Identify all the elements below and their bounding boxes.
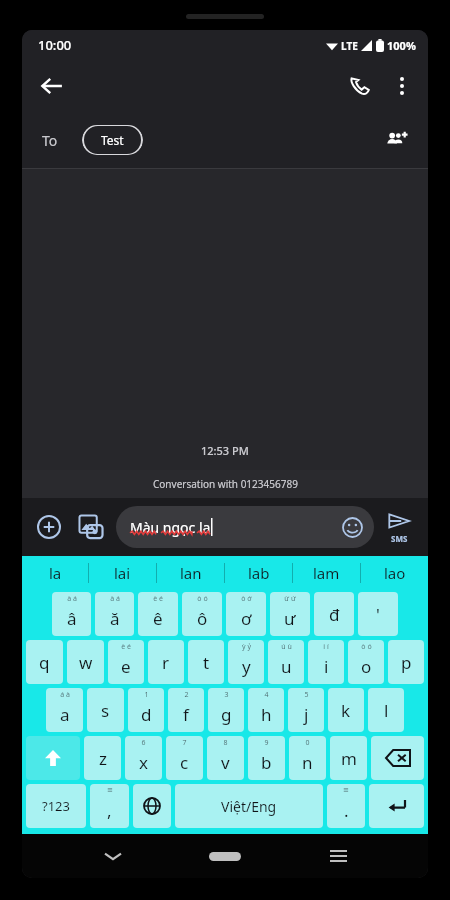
button[interactable]: 7 [166, 736, 203, 780]
button[interactable]: ?123 [26, 784, 86, 828]
button[interactable]: Backspace [371, 736, 424, 780]
staticText: v [221, 751, 230, 774]
staticText: r [162, 651, 170, 674]
button[interactable]: 0 [289, 736, 326, 780]
button[interactable]: la [22, 556, 88, 590]
staticText: p [401, 651, 412, 674]
button[interactable]: Gallery [72, 508, 110, 546]
staticText: â [67, 607, 77, 630]
button[interactable]: Việt/Eng [175, 784, 323, 828]
staticText: o [361, 655, 372, 678]
button[interactable]: Add attachment [30, 508, 68, 546]
staticText: t [203, 651, 210, 674]
button[interactable]: Send SMS [378, 498, 420, 556]
button[interactable]: s [87, 688, 124, 732]
button[interactable]: Home [203, 834, 247, 878]
staticText: 8 [223, 738, 228, 748]
staticText: w [79, 651, 93, 674]
staticText: 3 [224, 690, 229, 700]
staticText: 0 [305, 738, 310, 748]
staticText: u [281, 655, 292, 678]
button[interactable]: Màu ngọc la [116, 506, 374, 548]
button[interactable]: Shift [26, 736, 80, 780]
button[interactable]: More options [382, 66, 422, 106]
button[interactable]: lam [293, 556, 360, 590]
button[interactable]: ' [358, 592, 398, 636]
button[interactable]: lan [157, 556, 224, 590]
staticText: 2 [184, 690, 189, 700]
staticText: ≡ [107, 786, 113, 794]
staticText: ≡ [343, 786, 349, 794]
button[interactable]: 2 [168, 688, 204, 732]
button[interactable]: 3 [208, 688, 244, 732]
button[interactable]: ≡ [90, 784, 129, 828]
staticText: 10:00 [38, 36, 72, 54]
staticText: b [261, 751, 272, 774]
button[interactable]: ò ó [182, 592, 222, 636]
staticText: l [384, 699, 389, 722]
button[interactable]: i í [308, 640, 344, 684]
staticText: ò ó [197, 594, 208, 604]
staticText: ă [110, 607, 120, 630]
button[interactable]: ỳ ỷ [228, 640, 264, 684]
staticText: n [302, 751, 313, 774]
button[interactable]: Hide keyboard [91, 834, 135, 878]
button[interactable]: Change language [133, 784, 171, 828]
staticText: 9 [264, 738, 269, 748]
staticText: ' [376, 603, 380, 626]
button[interactable]: lab [225, 556, 292, 590]
staticText: 7 [182, 738, 187, 748]
button[interactable]: z [84, 736, 121, 780]
staticText: ơ [241, 607, 252, 630]
button[interactable]: r [148, 640, 184, 684]
staticText: à á [110, 594, 120, 604]
button[interactable]: lai [89, 556, 156, 590]
button[interactable]: k [328, 688, 364, 732]
button[interactable]: Test [82, 125, 143, 155]
staticText: ỳ ỷ [242, 642, 251, 652]
button[interactable]: l [368, 688, 404, 732]
button[interactable]: ừ ứ [270, 592, 310, 636]
button[interactable]: à á [95, 592, 134, 636]
staticText: lam [313, 563, 340, 583]
button[interactable]: Recent apps [316, 834, 360, 878]
button[interactable]: Enter [369, 784, 424, 828]
staticText: e [121, 655, 131, 678]
button[interactable]: m [330, 736, 367, 780]
button[interactable]: 6 [125, 736, 162, 780]
button[interactable]: ò ớ [226, 592, 266, 636]
button[interactable]: è é [138, 592, 178, 636]
button[interactable]: ≡ [327, 784, 365, 828]
button[interactable]: 9 [248, 736, 285, 780]
button[interactable]: lao [361, 556, 428, 590]
button[interactable]: à á [52, 592, 91, 636]
button[interactable]: Add people [376, 119, 418, 161]
button[interactable]: đ [314, 592, 354, 636]
staticText: lab [248, 563, 270, 583]
button[interactable]: Emoji [338, 513, 366, 541]
button[interactable]: Back [30, 64, 74, 108]
staticText: ư [284, 607, 296, 630]
staticText: k [341, 699, 351, 722]
button[interactable]: ú ù [268, 640, 304, 684]
staticText: đ [329, 603, 340, 626]
staticText: c [180, 751, 189, 774]
button[interactable]: 1 [128, 688, 164, 732]
button[interactable]: 5 [288, 688, 324, 732]
staticText: Việt/Eng [221, 797, 277, 816]
staticText: 12:53 PM [201, 443, 249, 458]
button[interactable]: ò ó [348, 640, 384, 684]
button[interactable]: á à [46, 688, 83, 732]
button[interactable]: è é [108, 640, 144, 684]
button[interactable]: 4 [248, 688, 284, 732]
button[interactable]: p [388, 640, 424, 684]
button[interactable]: q [26, 640, 63, 684]
staticText: Conversation with 0123456789 [153, 477, 298, 491]
button[interactable]: Call [338, 64, 382, 108]
button[interactable]: w [67, 640, 104, 684]
staticText: lan [180, 563, 202, 583]
staticText: x [139, 751, 148, 774]
button[interactable]: 8 [207, 736, 244, 780]
button[interactable]: t [188, 640, 224, 684]
staticText: á à [60, 690, 70, 700]
